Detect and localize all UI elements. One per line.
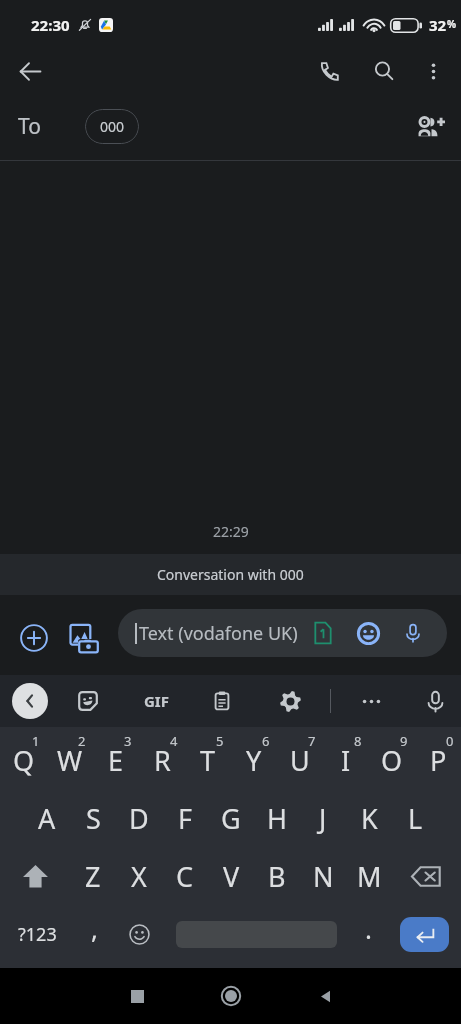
button[interactable]: S: [70, 789, 116, 847]
button[interactable]: Voice input: [415, 681, 455, 721]
staticText: B: [268, 858, 286, 895]
button[interactable]: U: [277, 731, 323, 789]
button[interactable]: P: [415, 731, 461, 789]
button[interactable]: Search: [363, 50, 405, 92]
staticText: 4: [170, 732, 178, 750]
button[interactable]: O: [369, 731, 415, 789]
button[interactable]: J: [300, 789, 346, 847]
button[interactable]: C: [162, 847, 208, 905]
staticText: R: [154, 742, 171, 779]
button[interactable]: Add attachment: [12, 616, 56, 660]
staticText: 0: [446, 732, 454, 750]
staticText: ?123: [18, 922, 57, 947]
button[interactable]: Collapse toolbar: [12, 683, 48, 719]
button[interactable]: Emoji: [115, 905, 163, 963]
button[interactable]: Call: [308, 50, 350, 92]
staticText: X: [131, 858, 147, 895]
staticText: W: [57, 742, 83, 779]
staticText: 6: [262, 732, 270, 750]
button[interactable]: More: [351, 681, 391, 721]
button[interactable]: GIF: [136, 681, 176, 721]
button[interactable]: T: [185, 731, 231, 789]
button[interactable]: Clipboard: [202, 681, 242, 721]
staticText: Y: [246, 742, 262, 779]
staticText: Q: [13, 742, 35, 779]
staticText: 5: [216, 732, 224, 750]
staticText: 8: [354, 732, 362, 750]
staticText: F: [178, 800, 193, 837]
staticText: G: [221, 800, 241, 837]
button[interactable]: ,: [74, 905, 115, 963]
staticText: ,: [91, 911, 98, 946]
button[interactable]: More options: [413, 51, 453, 91]
button[interactable]: 000: [85, 109, 139, 144]
staticText: 22:29: [213, 522, 249, 541]
button[interactable]: Recents: [101, 968, 173, 1024]
button[interactable]: Home: [195, 968, 267, 1024]
staticText: 32: [429, 15, 447, 35]
button[interactable]: Stickers: [68, 681, 108, 721]
staticText: N: [313, 858, 334, 895]
button[interactable]: B: [254, 847, 300, 905]
button[interactable]: E: [93, 731, 139, 789]
button[interactable]: Back: [289, 968, 361, 1024]
staticText: C: [176, 858, 194, 895]
button[interactable]: V: [208, 847, 254, 905]
staticText: 1: [32, 732, 40, 750]
staticText: P: [430, 742, 447, 779]
staticText: 000: [100, 117, 125, 136]
button[interactable]: X: [116, 847, 162, 905]
staticText: S: [86, 800, 101, 837]
button[interactable]: ?123: [0, 905, 74, 963]
staticText: 2: [78, 732, 86, 750]
staticText: Z: [85, 858, 101, 895]
button[interactable]: G: [208, 789, 254, 847]
button[interactable]: A: [24, 789, 70, 847]
staticText: GIF: [144, 691, 169, 711]
staticText: 22:30: [31, 15, 70, 35]
button[interactable]: M: [346, 847, 392, 905]
staticText: M: [357, 858, 382, 895]
button[interactable]: Enter: [400, 917, 449, 952]
staticText: 7: [308, 732, 316, 750]
staticText: J: [319, 800, 327, 837]
staticText: 9: [400, 732, 408, 750]
button[interactable]: F: [162, 789, 208, 847]
button[interactable]: D: [116, 789, 162, 847]
staticText: .: [365, 911, 372, 946]
staticText: L: [408, 800, 423, 837]
staticText: D: [129, 800, 149, 837]
button[interactable]: Y: [231, 731, 277, 789]
staticText: Conversation with 000: [157, 565, 304, 584]
button[interactable]: W: [47, 731, 93, 789]
button[interactable]: Settings: [270, 681, 310, 721]
button[interactable]: I: [323, 731, 369, 789]
button[interactable]: Shift: [0, 847, 70, 905]
staticText: Text (vodafone UK): [139, 621, 311, 646]
staticText: To: [18, 112, 41, 141]
button[interactable]: L: [392, 789, 438, 847]
staticText: %: [447, 17, 457, 31]
button[interactable]: Back: [9, 50, 51, 92]
button[interactable]: K: [346, 789, 392, 847]
staticText: A: [38, 800, 56, 837]
button[interactable]: .: [350, 905, 387, 963]
staticText: V: [223, 858, 240, 895]
staticText: 3: [124, 732, 132, 750]
button[interactable]: Text (vodafone UK): [118, 609, 447, 657]
button[interactable]: Send photo: [62, 616, 106, 660]
staticText: H: [267, 800, 288, 837]
button[interactable]: Backspace: [392, 847, 461, 905]
button[interactable]: Q: [0, 731, 47, 789]
button[interactable]: Add contact: [409, 104, 453, 148]
button[interactable]: H: [254, 789, 300, 847]
staticText: I: [341, 742, 351, 779]
staticText: U: [290, 742, 310, 779]
staticText: K: [361, 800, 378, 837]
staticText: T: [200, 742, 216, 779]
button[interactable]: Z: [70, 847, 116, 905]
staticText: E: [108, 742, 124, 779]
button[interactable]: N: [300, 847, 346, 905]
button[interactable]: R: [139, 731, 185, 789]
